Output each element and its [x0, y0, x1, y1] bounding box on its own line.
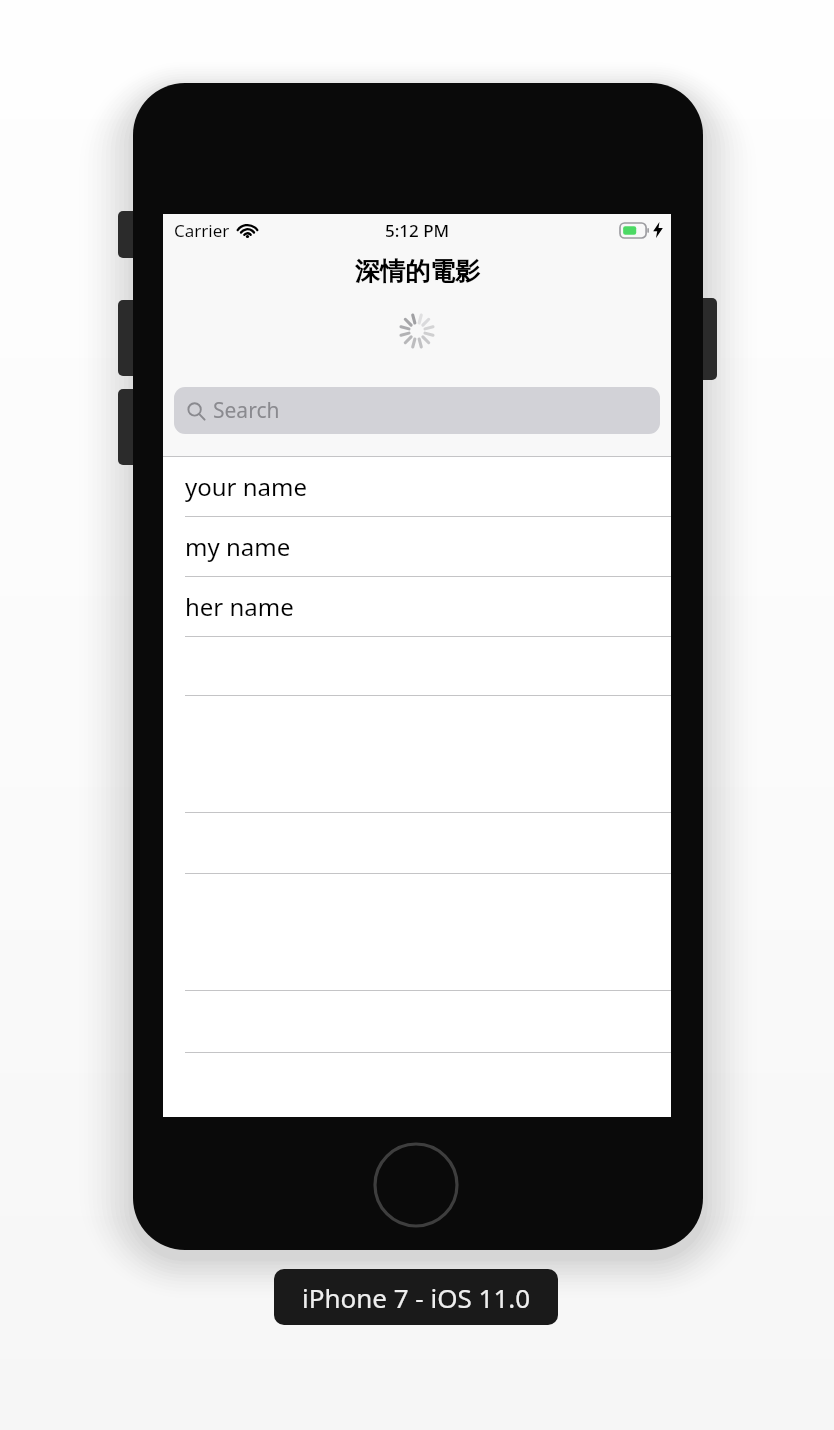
button[interactable]: my name — [163, 517, 671, 577]
staticText: iPhone 7 - iOS 11.0 — [302, 1280, 531, 1315]
button[interactable]: her name — [163, 577, 671, 637]
staticText: 深情的電影 — [355, 256, 480, 287]
staticText: your name — [185, 470, 308, 503]
button[interactable]: Search — [174, 387, 660, 434]
staticText: my name — [185, 530, 291, 563]
staticText: Carrier — [174, 219, 230, 242]
staticText: Search — [213, 396, 280, 425]
button[interactable]: iPhone 7 - iOS 11.0 — [274, 1269, 558, 1325]
staticText: her name — [185, 590, 294, 623]
other: Search — [186, 401, 206, 421]
button[interactable]: your name — [163, 457, 671, 517]
staticText: 5:12 PM — [385, 219, 450, 242]
